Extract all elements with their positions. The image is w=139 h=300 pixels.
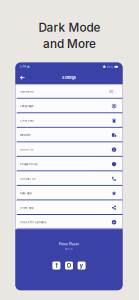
staticText: Dark Mode bbox=[20, 90, 34, 93]
staticText: O bbox=[66, 262, 71, 269]
staticText: 26% bbox=[106, 65, 113, 68]
staticText: y bbox=[80, 262, 84, 269]
staticText: 5:14 bbox=[20, 65, 26, 68]
button[interactable]: Clear Data bbox=[15, 113, 122, 128]
button[interactable]: About us bbox=[15, 142, 122, 157]
staticText: Share app bbox=[20, 206, 34, 209]
button[interactable]: Check for updates bbox=[15, 215, 122, 229]
staticText: Language bbox=[20, 104, 34, 108]
button[interactable]: Share app bbox=[15, 200, 122, 215]
button[interactable]: Contact us bbox=[15, 171, 122, 186]
staticText: Dark Mode bbox=[38, 20, 100, 35]
button[interactable]: Rate app bbox=[15, 186, 122, 200]
staticText: About us bbox=[20, 148, 33, 151]
staticText: v1.0.0 bbox=[65, 247, 73, 251]
button[interactable]: Back bbox=[18, 72, 27, 83]
staticText: Website bbox=[20, 133, 31, 137]
button[interactable]: Facebook bbox=[52, 261, 60, 269]
button[interactable]: Privacy Policy bbox=[15, 157, 122, 171]
button[interactable]: Twitter bbox=[78, 261, 86, 269]
button[interactable]: Language bbox=[15, 99, 122, 113]
staticText: Check for updates bbox=[20, 221, 46, 224]
staticText: Prime Player bbox=[59, 242, 79, 246]
staticText: Privacy Policy bbox=[20, 162, 37, 166]
button[interactable]: Instagram bbox=[65, 261, 73, 269]
button[interactable]: Dark Mode bbox=[15, 84, 122, 99]
staticText: Rate app bbox=[20, 192, 32, 195]
staticText: f bbox=[55, 262, 57, 269]
staticText: Settings bbox=[62, 75, 76, 80]
staticText: Contact us bbox=[20, 177, 35, 180]
button[interactable]: Website bbox=[15, 128, 122, 142]
staticText: Clear Data bbox=[20, 119, 33, 122]
staticText: and More bbox=[43, 37, 96, 51]
